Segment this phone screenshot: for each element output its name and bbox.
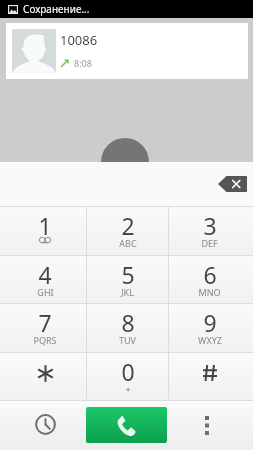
button[interactable]: [169, 353, 250, 400]
button[interactable]: [4, 353, 86, 400]
button[interactable]: Call log: [0, 401, 86, 450]
button[interactable]: 7: [4, 304, 86, 352]
button[interactable]: 9: [169, 304, 250, 352]
staticText: PQRS: [33, 334, 57, 346]
staticText: 2: [121, 210, 135, 241]
staticText: ABC: [119, 237, 137, 249]
button[interactable]: 8: [87, 304, 168, 352]
button[interactable]: 4: [4, 256, 86, 303]
staticText: DEF: [201, 237, 218, 249]
staticText: 8: [121, 307, 135, 338]
button[interactable]: Call: [86, 407, 167, 443]
button[interactable]: 2: [87, 207, 168, 255]
staticText: TUV: [119, 334, 136, 346]
staticText: 6: [203, 259, 217, 290]
staticText: 0: [121, 356, 135, 387]
button[interactable]: 6: [169, 256, 250, 303]
staticText: 9: [203, 307, 217, 338]
button[interactable]: 5: [87, 256, 168, 303]
staticText: 7: [38, 307, 52, 338]
button[interactable]: 0: [87, 353, 168, 400]
staticText: WXYZ: [198, 334, 222, 346]
staticText: 4: [38, 259, 52, 290]
button[interactable]: 1: [4, 207, 86, 255]
button[interactable]: More options: [167, 401, 253, 450]
staticText: MNO: [198, 286, 221, 298]
staticText: 5: [121, 259, 135, 290]
button[interactable]: 3: [169, 207, 250, 255]
staticText: JKL: [121, 286, 134, 298]
staticText: 8:08: [74, 57, 92, 69]
staticText: Сохранение...: [23, 2, 90, 16]
button[interactable]: 10086: [6, 23, 248, 79]
staticText: 1: [38, 210, 52, 241]
button[interactable]: Delete: [218, 176, 247, 192]
staticText: +: [125, 383, 131, 395]
staticText: 10086: [60, 31, 98, 49]
staticText: 3: [203, 210, 217, 241]
staticText: GHI: [37, 286, 54, 298]
